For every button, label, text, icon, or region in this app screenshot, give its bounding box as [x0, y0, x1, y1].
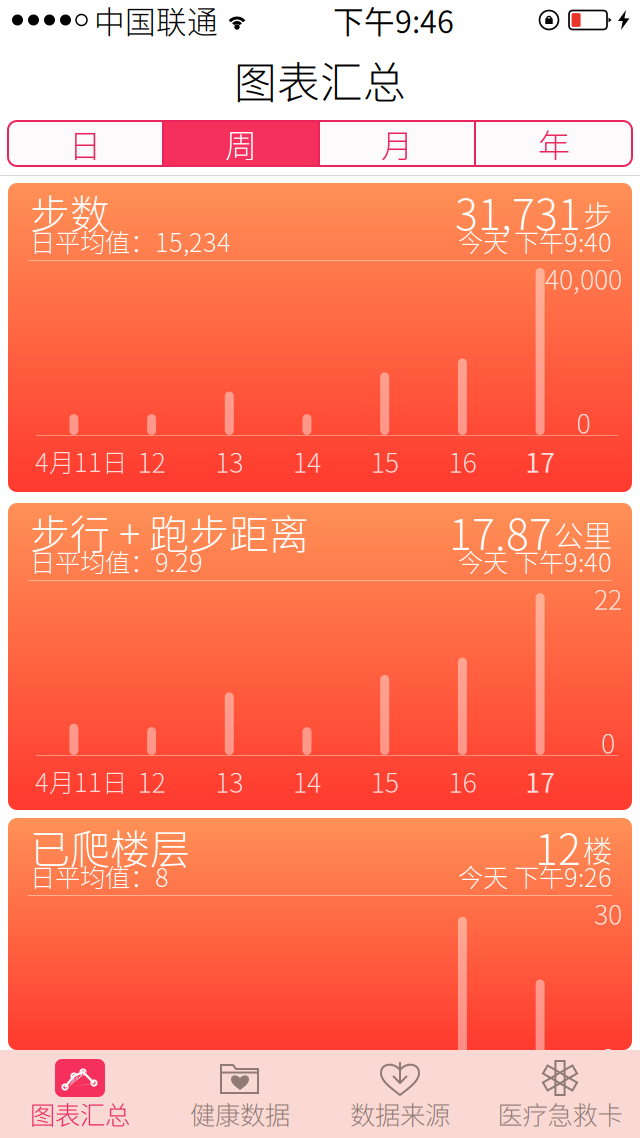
staticText: 图表汇总 — [30, 1095, 130, 1132]
staticText: 13 — [215, 442, 243, 480]
staticText: 13 — [215, 762, 243, 800]
staticText: 日平均值：8 — [30, 858, 169, 894]
staticText: 17 — [525, 442, 555, 480]
staticText: 22 — [594, 579, 622, 617]
staticText: 15 — [371, 1077, 399, 1115]
staticText: 15 — [371, 762, 399, 800]
button[interactable]: 医疗急救卡 — [480, 1050, 640, 1138]
staticText: 14 — [293, 442, 321, 480]
staticText: 周 — [225, 120, 257, 167]
button[interactable]: 年 — [476, 121, 632, 166]
staticText: 12 — [138, 762, 166, 800]
staticText: 16 — [448, 442, 476, 480]
staticText: 17 — [525, 762, 555, 800]
staticText: 下午9:46 — [333, 0, 454, 42]
staticText: 健康数据 — [190, 1095, 290, 1132]
button[interactable]: 数据来源 — [320, 1050, 480, 1138]
button[interactable]: 健康数据 — [160, 1050, 320, 1138]
staticText: 年 — [538, 120, 570, 167]
staticText: 图表汇总 — [234, 49, 406, 111]
button[interactable]: 日 — [8, 121, 164, 166]
staticText: 楼 — [583, 828, 612, 870]
staticText: 17 — [525, 1077, 555, 1115]
staticText: 步数 — [30, 182, 110, 240]
staticText: 0 — [601, 723, 615, 761]
staticText: 16 — [448, 762, 476, 800]
button[interactable]: 月 — [320, 121, 476, 166]
staticText: 今天 下午9:40 — [458, 543, 612, 579]
staticText: 今天 下午9:26 — [458, 858, 612, 894]
staticText: 今天 下午9:40 — [458, 223, 612, 259]
staticText: 40,000 — [545, 259, 622, 297]
staticText: 4月11日 — [35, 1078, 127, 1114]
staticText: 中国联通 — [87, 0, 225, 42]
staticText: 0 — [576, 403, 590, 441]
staticText: 月 — [381, 120, 413, 167]
staticText: 16 — [448, 1077, 476, 1115]
staticText: 日平均值：15,234 — [30, 223, 231, 259]
staticText: 日 — [69, 120, 101, 167]
staticText: 数据来源 — [350, 1095, 450, 1132]
staticText: 31,731 — [455, 181, 581, 242]
staticText: 公里 — [554, 513, 612, 555]
staticText: 12 — [138, 442, 166, 480]
staticText: 步行 + 跑步距离 — [30, 502, 309, 560]
staticText: 医疗急救卡 — [497, 1095, 622, 1132]
staticText: 15 — [371, 442, 399, 480]
staticText: 日平均值：9.29 — [30, 543, 203, 579]
staticText: 14 — [293, 762, 321, 800]
staticText: 已爬楼层 — [30, 817, 190, 875]
button[interactable]: 周 — [164, 121, 320, 166]
staticText: 12 — [535, 816, 581, 877]
staticText: 0 — [601, 1038, 615, 1076]
staticText: 步 — [583, 193, 612, 235]
staticText: 17.87 — [449, 501, 552, 562]
staticText: 13 — [215, 1077, 243, 1115]
staticText: 4月11日 — [35, 763, 127, 799]
staticText: 4月11日 — [35, 443, 127, 479]
button[interactable]: 图表汇总 — [0, 1050, 160, 1138]
staticText: 30 — [594, 894, 622, 932]
